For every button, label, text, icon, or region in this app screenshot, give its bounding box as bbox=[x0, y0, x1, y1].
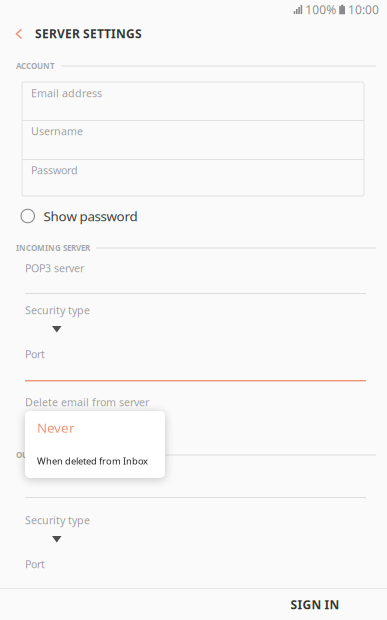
button[interactable]: SIGN IN bbox=[265, 589, 365, 620]
staticText: POP3 server bbox=[25, 261, 84, 275]
staticText: 100% bbox=[305, 1, 336, 17]
staticText: Email address bbox=[31, 86, 102, 100]
staticText: Security type bbox=[25, 303, 90, 317]
staticText: Port bbox=[25, 347, 45, 361]
staticText: SIGN IN bbox=[290, 596, 339, 612]
button[interactable]: Show password bbox=[0, 204, 200, 228]
staticText: Show password bbox=[43, 207, 137, 225]
staticText: Security type bbox=[25, 513, 90, 527]
staticText: Delete email from server bbox=[25, 395, 149, 409]
button[interactable]: Back bbox=[5, 20, 33, 48]
button[interactable]: Never bbox=[25, 411, 165, 444]
staticText: Port bbox=[25, 557, 45, 571]
staticText: Password bbox=[31, 163, 78, 177]
staticText: 10:00 bbox=[348, 1, 379, 17]
button[interactable]: When deleted from Inbox bbox=[25, 444, 165, 478]
staticText: SERVER SETTINGS bbox=[35, 25, 142, 41]
staticText: OUTGOING SERVER bbox=[16, 450, 89, 460]
staticText: ACCOUNT bbox=[16, 61, 55, 71]
staticText: Never bbox=[37, 419, 75, 436]
staticText: INCOMING SERVER bbox=[16, 243, 90, 253]
staticText: Username bbox=[31, 124, 83, 138]
staticText: When deleted from Inbox bbox=[37, 455, 148, 467]
